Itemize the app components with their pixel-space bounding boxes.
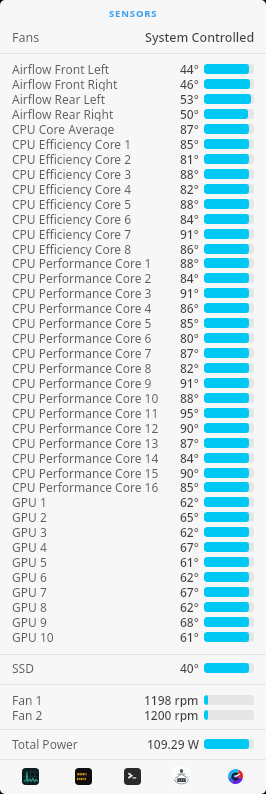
button[interactable]: CPU Performance Core 8 <box>0 360 266 375</box>
button[interactable]: CPU Performance Core 9 <box>0 375 266 390</box>
staticText: 86° <box>180 241 199 256</box>
staticText: 87° <box>180 121 199 136</box>
button[interactable]: CPU Performance Core 15 <box>0 465 266 480</box>
button[interactable]: Fans <box>0 29 266 45</box>
staticText: GPU 8 <box>12 599 47 614</box>
button[interactable]: Warning Log <box>75 768 92 785</box>
staticText: 62° <box>180 599 199 614</box>
button[interactable]: CPU Efficiency Core 5 <box>0 196 266 211</box>
button[interactable]: GPU 3 <box>0 524 266 539</box>
button[interactable]: Airflow Front Left <box>0 61 266 76</box>
staticText: 91° <box>180 285 199 300</box>
staticText: 50° <box>180 106 199 121</box>
staticText: System Controlled <box>145 29 255 45</box>
staticText: CPU Performance Core 5 <box>12 315 152 330</box>
button[interactable]: Terminal <box>124 768 141 785</box>
staticText: 87° <box>180 435 199 450</box>
button[interactable]: Fan 2 <box>0 707 266 722</box>
staticText: CPU Performance Core 15 <box>12 465 159 480</box>
staticText: CPU Performance Core 14 <box>12 450 159 465</box>
button[interactable]: CPU Performance Core 11 <box>0 405 266 420</box>
staticText: CPU Efficiency Core 4 <box>12 181 132 196</box>
staticText: CPU Performance Core 16 <box>12 479 159 494</box>
staticText: 87° <box>180 345 199 360</box>
button[interactable]: SSD <box>0 660 266 675</box>
button[interactable]: CPU Efficiency Core 2 <box>0 151 266 166</box>
staticText: GPU 5 <box>12 554 47 569</box>
button[interactable]: CPU Efficiency Core 6 <box>0 211 266 226</box>
staticText: GPU 10 <box>12 629 54 644</box>
staticText: 61° <box>180 554 199 569</box>
button[interactable]: CPU Performance Core 5 <box>0 315 266 330</box>
button[interactable]: CPU Performance Core 14 <box>0 450 266 465</box>
button[interactable]: CPU Performance Core 16 <box>0 479 266 494</box>
button[interactable]: CPU Performance Core 12 <box>0 420 266 435</box>
staticText: 62° <box>180 569 199 584</box>
staticText: CPU Performance Core 11 <box>12 405 159 420</box>
staticText: CPU Performance Core 4 <box>12 300 152 315</box>
button[interactable]: CPU Efficiency Core 1 <box>0 136 266 151</box>
button[interactable]: CPU Efficiency Core 4 <box>0 181 266 196</box>
button[interactable]: GPU 9 <box>0 614 266 629</box>
button[interactable]: CPU Performance Core 3 <box>0 285 266 300</box>
staticText: GPU 4 <box>12 539 47 554</box>
button[interactable]: GPU 1 <box>0 494 266 509</box>
button[interactable]: Activity Monitor <box>22 768 39 785</box>
button[interactable]: Printer Setup <box>172 767 191 785</box>
button[interactable]: GPU 5 <box>0 554 266 569</box>
staticText: CPU Performance Core 3 <box>12 285 152 300</box>
staticText: Fan 1 <box>12 692 43 707</box>
button[interactable]: CPU Performance Core 1 <box>0 255 266 270</box>
button[interactable]: GPU 8 <box>0 599 266 614</box>
staticText: CPU Performance Core 6 <box>12 330 152 345</box>
button[interactable]: CPU Performance Core 10 <box>0 390 266 405</box>
staticText: CPU Performance Core 8 <box>12 360 152 375</box>
staticText: CPU Efficiency Core 1 <box>12 136 132 151</box>
staticText: 88° <box>180 390 199 405</box>
staticText: 67° <box>180 539 199 554</box>
button[interactable]: GPU 7 <box>0 584 266 599</box>
button[interactable]: Airflow Rear Left <box>0 91 266 106</box>
staticText: 62° <box>180 494 199 509</box>
button[interactable]: Web Browser <box>227 768 244 785</box>
staticText: Airflow Front Left <box>12 61 110 76</box>
staticText: 84° <box>180 450 199 465</box>
staticText: CPU Performance Core 1 <box>12 255 152 270</box>
button[interactable]: GPU 10 <box>0 629 266 644</box>
button[interactable]: CPU Performance Core 2 <box>0 270 266 285</box>
staticText: GPU 6 <box>12 569 47 584</box>
staticText: 46° <box>180 76 199 91</box>
button[interactable]: Total Power <box>0 736 266 751</box>
button[interactable]: CPU Efficiency Core 8 <box>0 241 266 256</box>
staticText: 40° <box>180 660 199 675</box>
staticText: GPU 9 <box>12 614 47 629</box>
staticText: 109.29 W <box>147 736 199 751</box>
staticText: 61° <box>180 629 199 644</box>
staticText: Fan 2 <box>12 707 43 722</box>
staticText: 53° <box>180 91 199 106</box>
button[interactable]: CPU Efficiency Core 3 <box>0 166 266 181</box>
button[interactable]: GPU 6 <box>0 569 266 584</box>
button[interactable]: GPU 4 <box>0 539 266 554</box>
staticText: 85° <box>180 315 199 330</box>
staticText: 90° <box>180 420 199 435</box>
button[interactable]: CPU Performance Core 7 <box>0 345 266 360</box>
button[interactable]: Fan 1 <box>0 692 266 707</box>
staticText: CPU Efficiency Core 2 <box>12 151 132 166</box>
staticText: 91° <box>180 375 199 390</box>
staticText: CPU Performance Core 12 <box>12 420 159 435</box>
button[interactable]: CPU Performance Core 4 <box>0 300 266 315</box>
button[interactable]: CPU Performance Core 6 <box>0 330 266 345</box>
button[interactable]: Airflow Front Right <box>0 76 266 91</box>
staticText: 1198 rpm <box>144 692 199 707</box>
staticText: 85° <box>180 136 199 151</box>
staticText: 80° <box>180 330 199 345</box>
button[interactable]: Airflow Rear Right <box>0 106 266 121</box>
button[interactable]: GPU 2 <box>0 509 266 524</box>
staticText: 82° <box>180 360 199 375</box>
staticText: CPU Efficiency Core 7 <box>12 226 132 241</box>
button[interactable]: CPU Core Average <box>0 121 266 136</box>
button[interactable]: CPU Efficiency Core 7 <box>0 226 266 241</box>
staticText: SSD <box>12 660 34 675</box>
button[interactable]: CPU Performance Core 13 <box>0 435 266 450</box>
